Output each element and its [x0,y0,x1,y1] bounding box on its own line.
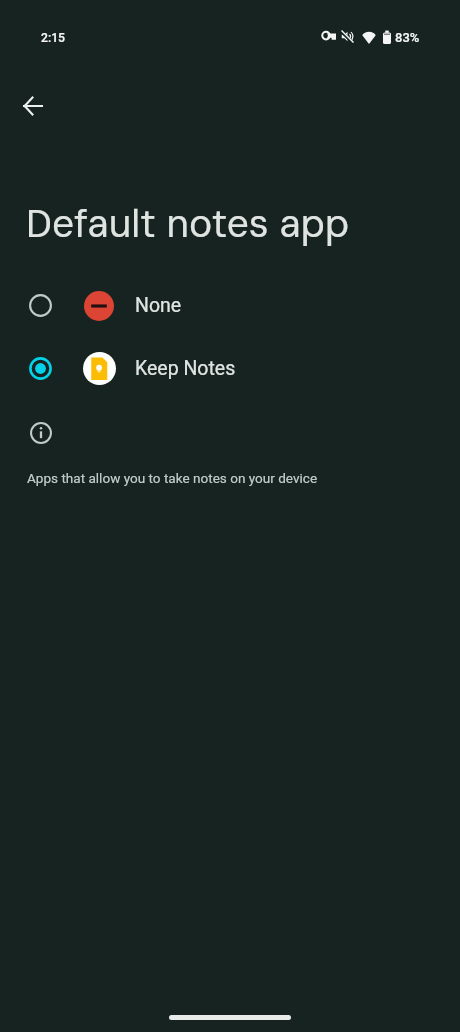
staticText: 83% [395,30,420,45]
button[interactable]: Back [9,82,57,130]
staticText: Apps that allow you to take notes on you… [27,470,318,486]
staticText: Default notes app [26,198,350,249]
button[interactable]: None [0,274,460,337]
staticText: Keep Notes [135,357,236,380]
staticText: 2:15 [41,31,66,45]
staticText: None [135,294,182,317]
button[interactable]: Keep Notes [0,337,460,400]
